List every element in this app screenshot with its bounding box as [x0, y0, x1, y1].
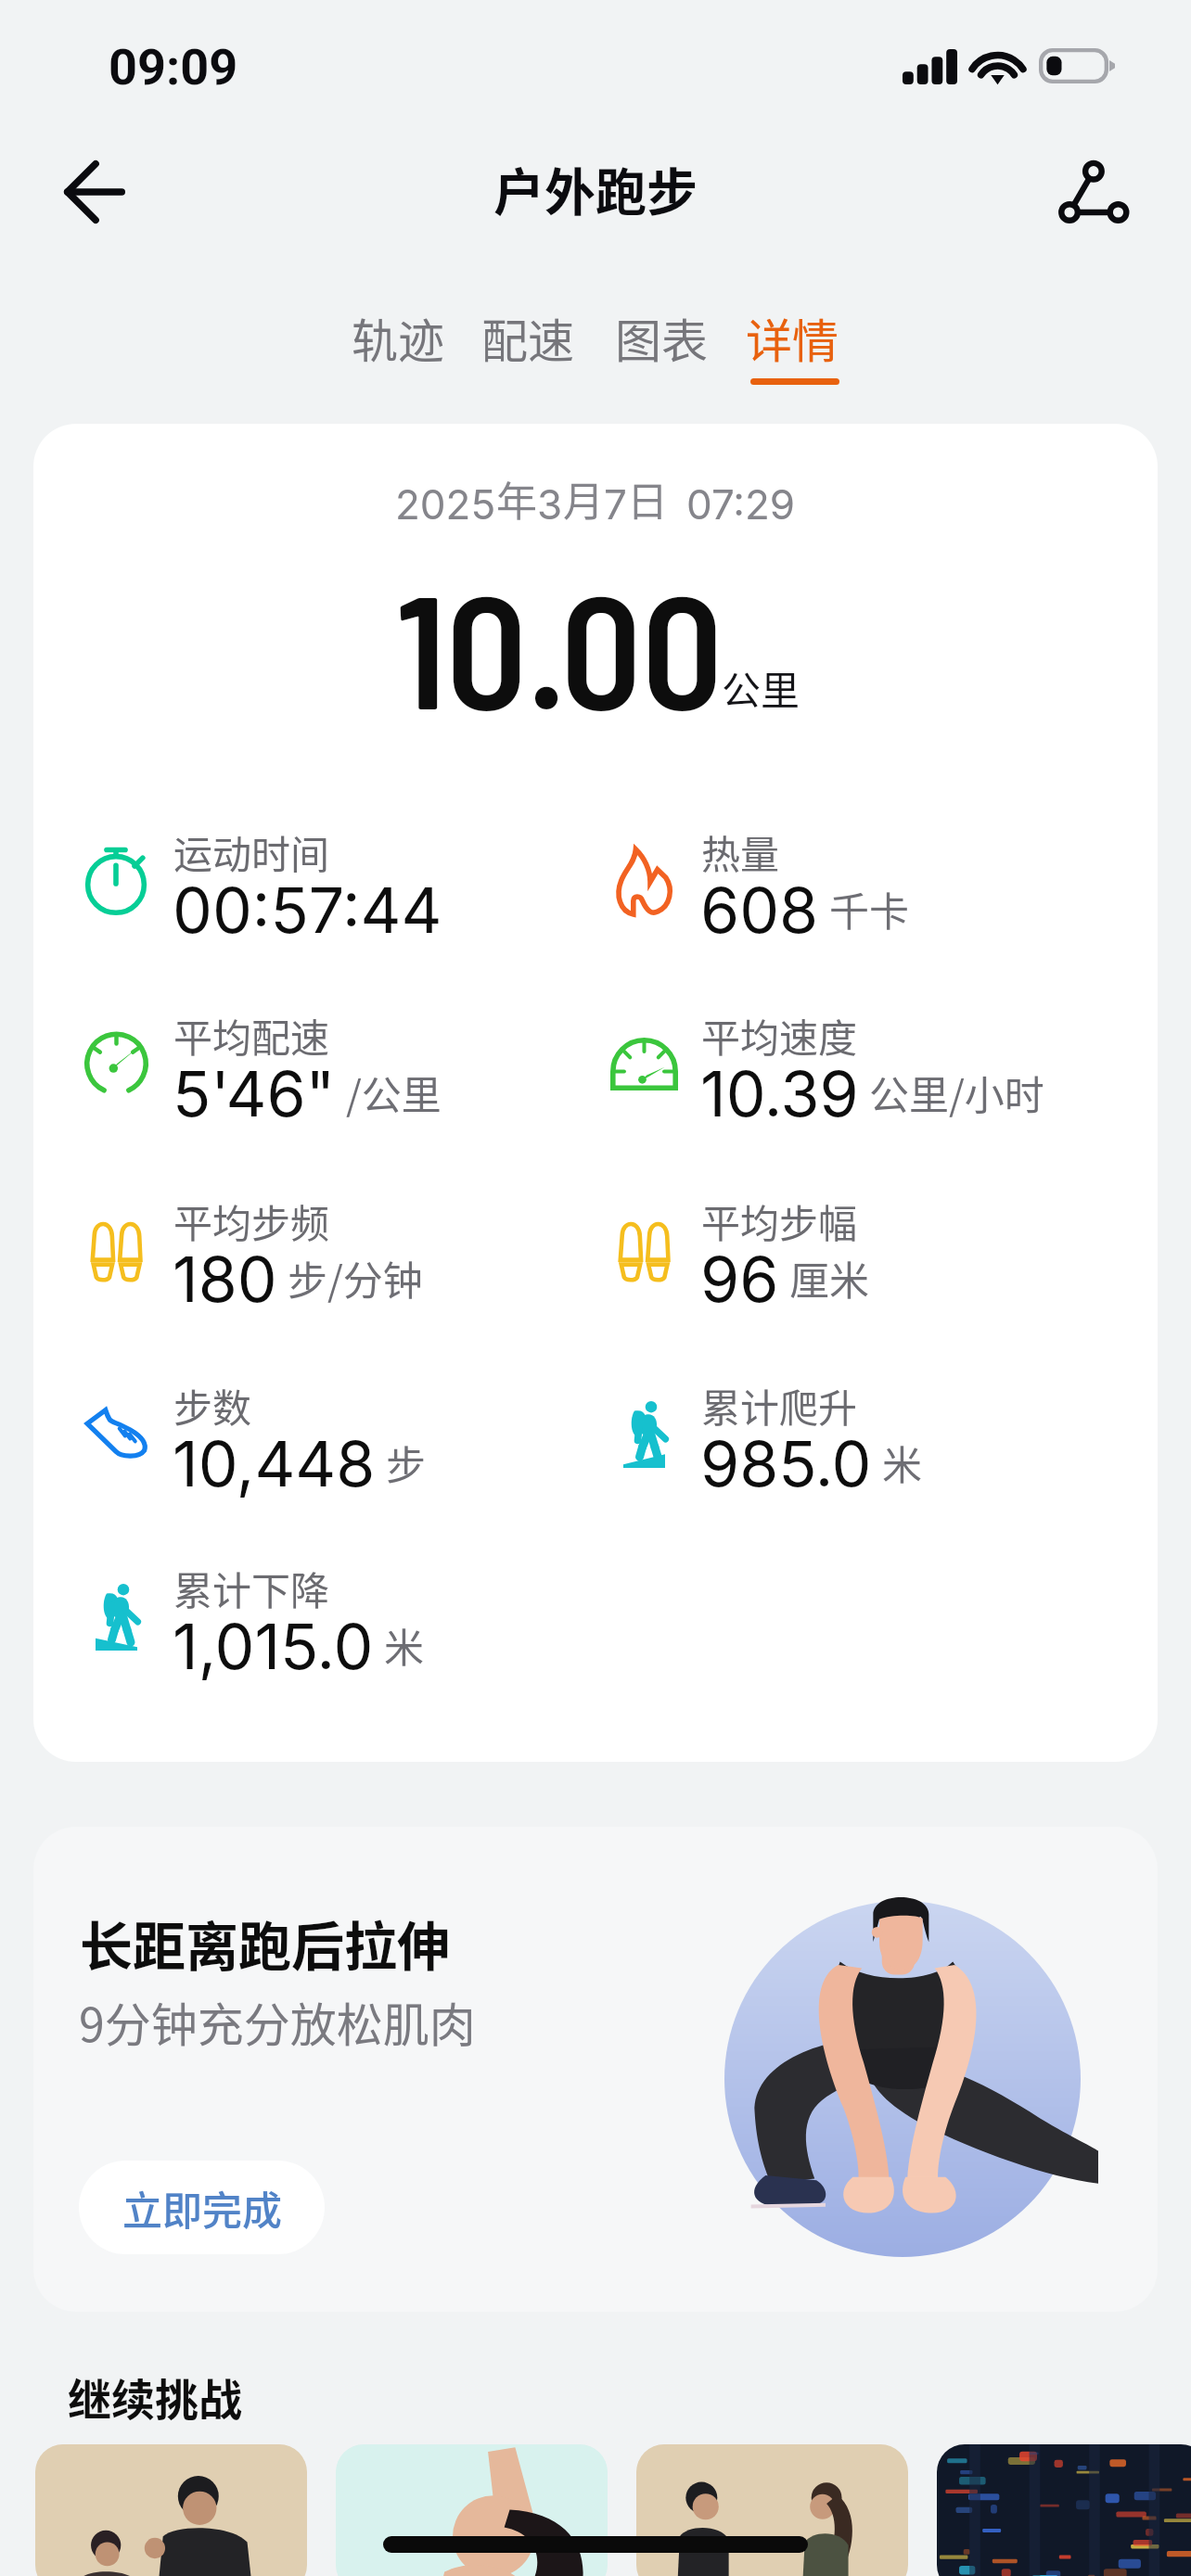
staticText: 详情 [746, 304, 839, 371]
button[interactable]: 轨迹 [333, 299, 465, 397]
staticText: 9分钟充分放松肌肉 [79, 1988, 476, 2055]
staticText: 月 [563, 469, 604, 529]
staticText: 累计爬升 [701, 1377, 858, 1434]
staticText: 年 [496, 469, 537, 529]
staticText: 公里 [722, 659, 800, 716]
staticText: 米 [882, 1434, 922, 1491]
staticText: 2025 [395, 479, 496, 529]
staticText: 5'46" [173, 1055, 336, 1131]
staticText: 平均步幅 [701, 1192, 858, 1249]
button[interactable]: 配速 [463, 299, 595, 397]
staticText: 10,448 [173, 1425, 376, 1501]
staticText: 千卡 [829, 880, 909, 937]
button[interactable]: 详情 [727, 299, 859, 397]
staticText: 运动时间 [173, 823, 330, 880]
button[interactable] [636, 2444, 908, 2576]
staticText: 3 [537, 479, 563, 529]
staticText: 米 [384, 1616, 424, 1674]
button[interactable] [35, 2444, 307, 2576]
staticText: 立即完成 [122, 2179, 282, 2237]
button[interactable]: 立即完成 [79, 2161, 325, 2254]
button[interactable] [336, 2444, 608, 2576]
staticText: 07:29 [686, 479, 796, 529]
staticText: 96 [700, 1241, 779, 1317]
button[interactable]: 图表 [596, 299, 728, 397]
staticText: 10.00 [396, 550, 724, 741]
staticText: 轨迹 [352, 304, 444, 371]
staticText: 日 [627, 469, 668, 529]
staticText: 累计下降 [173, 1560, 330, 1616]
staticText: 继续挑战 [68, 2365, 242, 2428]
button[interactable]: 长距离跑后拉伸 [33, 1827, 1158, 2312]
staticText: 长距离跑后拉伸 [80, 1905, 450, 1982]
staticText: 图表 [615, 304, 708, 371]
staticText: 平均步频 [173, 1192, 330, 1249]
staticText: 00:57:44 [173, 872, 442, 948]
button[interactable] [937, 2444, 1191, 2576]
staticText: 180 [173, 1241, 277, 1317]
staticText: 配速 [481, 304, 574, 371]
staticText: /公里 [346, 1064, 442, 1121]
staticText: 985.0 [700, 1425, 872, 1501]
staticText: 步数 [173, 1377, 252, 1434]
staticText: 10.39 [700, 1055, 859, 1131]
staticText: 公里/小时 [869, 1064, 1044, 1121]
staticText: 平均配速 [173, 1007, 330, 1064]
staticText: 户外跑步 [493, 151, 698, 225]
staticText: 厘米 [789, 1249, 869, 1307]
staticText: 步/分钟 [288, 1249, 423, 1307]
staticText: 09:09 [109, 38, 238, 96]
button[interactable]: Share [1038, 138, 1146, 246]
staticText: 热量 [701, 823, 780, 880]
button[interactable]: Back [41, 138, 148, 246]
staticText: 608 [700, 872, 819, 948]
staticText: 步 [386, 1434, 426, 1491]
staticText: 平均速度 [701, 1007, 858, 1064]
staticText: 7 [604, 479, 627, 529]
staticText: 1,015.0 [173, 1608, 374, 1684]
